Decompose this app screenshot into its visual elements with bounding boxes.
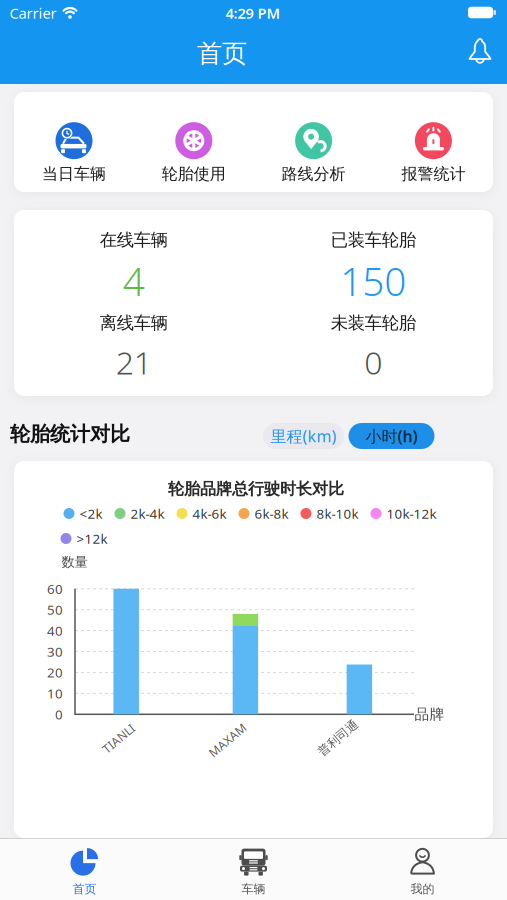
button[interactable]: 路线分析 (258, 118, 370, 188)
staticText: >12k (76, 530, 107, 547)
button[interactable]: 通知 (460, 32, 500, 72)
staticText: 30 (47, 643, 63, 660)
staticText: 4 (123, 255, 145, 307)
staticText: 10k-12k (386, 505, 436, 522)
staticText: 0 (364, 341, 382, 383)
button[interactable]: 我的 (362, 842, 482, 900)
staticText: 路线分析 (282, 164, 346, 184)
staticText: 我的 (410, 882, 434, 896)
staticText: 首页 (72, 882, 96, 896)
staticText: 6k-8k (254, 505, 288, 522)
staticText: 轮胎统计对比 (10, 422, 130, 446)
staticText: 40 (47, 622, 63, 639)
staticText: 已装车轮胎 (331, 229, 416, 251)
staticText: 2k-4k (130, 505, 164, 522)
staticText: 20 (47, 664, 63, 681)
button[interactable]: 车辆 (193, 842, 313, 900)
button[interactable]: 轮胎使用 (138, 118, 250, 188)
staticText: Carrier (9, 3, 56, 23)
staticText: 21 (116, 341, 152, 383)
staticText: TIANLI (99, 730, 137, 746)
staticText: 60 (47, 580, 63, 598)
staticText: 轮胎使用 (162, 164, 226, 184)
staticText: 报警统计 (401, 164, 465, 184)
staticText: 普利司通 (314, 731, 362, 745)
button[interactable]: 报警统计 (377, 118, 489, 188)
staticText: 车辆 (241, 882, 265, 896)
staticText: <2k (79, 505, 102, 522)
staticText: 小时(h) (365, 425, 417, 447)
staticText: MAXAM (205, 732, 250, 748)
button[interactable]: 里程(km) (263, 423, 344, 449)
button[interactable]: 首页 (24, 842, 144, 900)
staticText: 离线车辆 (100, 312, 168, 334)
staticText: 品牌 (414, 705, 444, 723)
staticText: 4k-6k (192, 505, 226, 522)
staticText: 在线车辆 (100, 229, 168, 251)
staticText: 8k-10k (316, 505, 358, 522)
staticText: 轮胎品牌总行驶时长对比 (168, 479, 344, 499)
button[interactable]: 小时(h) (348, 423, 434, 449)
staticText: 0 (55, 705, 63, 723)
staticText: 里程(km) (270, 425, 336, 447)
staticText: 首页 (197, 38, 247, 69)
button[interactable]: 当日车辆 (18, 118, 130, 188)
staticText: 未装车轮胎 (331, 312, 416, 334)
staticText: 4:29 PM (225, 3, 280, 23)
staticText: 当日车辆 (42, 164, 106, 184)
staticText: 150 (340, 255, 406, 307)
staticText: 10 (47, 684, 63, 702)
staticText: 50 (47, 601, 63, 618)
staticText: 数量 (61, 554, 87, 570)
